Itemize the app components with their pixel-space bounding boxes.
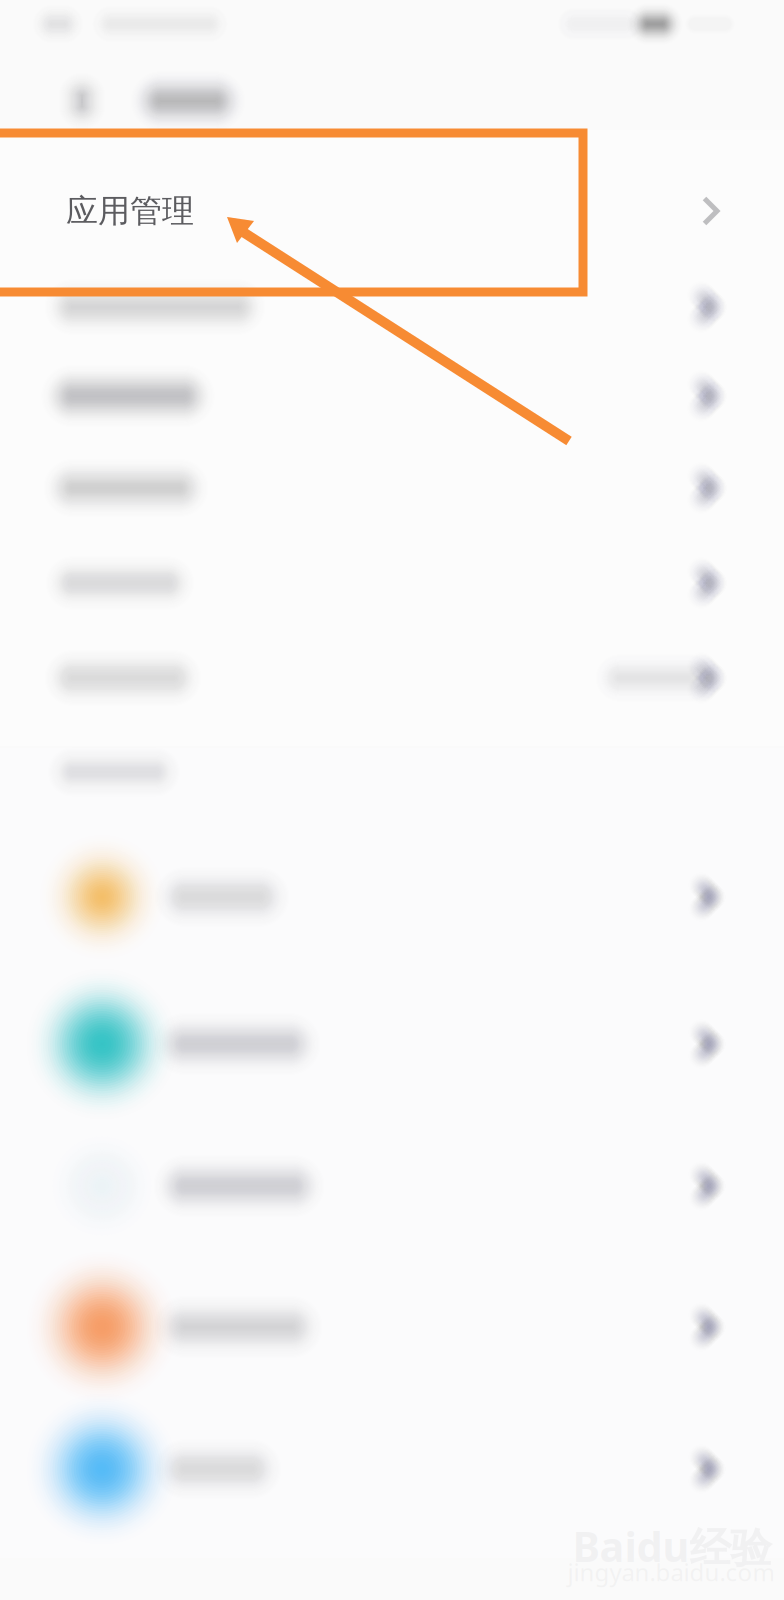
staticText: 应用管理 [66, 191, 194, 231]
button[interactable]: App entry [0, 826, 784, 968]
button[interactable]: App entry [0, 1115, 784, 1257]
button[interactable]: Settings row [0, 631, 784, 724]
button[interactable]: Settings row [0, 441, 784, 534]
button[interactable]: Settings row [0, 536, 784, 629]
staticText: Baidu经验 [572, 1518, 771, 1573]
button[interactable]: App entry [0, 1256, 784, 1398]
button[interactable]: Settings row [0, 349, 784, 442]
button[interactable]: App entry [0, 973, 784, 1115]
button[interactable]: 应用管理 [0, 130, 784, 292]
staticText: jingyan.baidu.com [567, 1556, 774, 1588]
button[interactable]: Settings row [0, 725, 784, 818]
button[interactable]: Settings row [0, 260, 784, 353]
button[interactable]: App entry [0, 1398, 784, 1540]
